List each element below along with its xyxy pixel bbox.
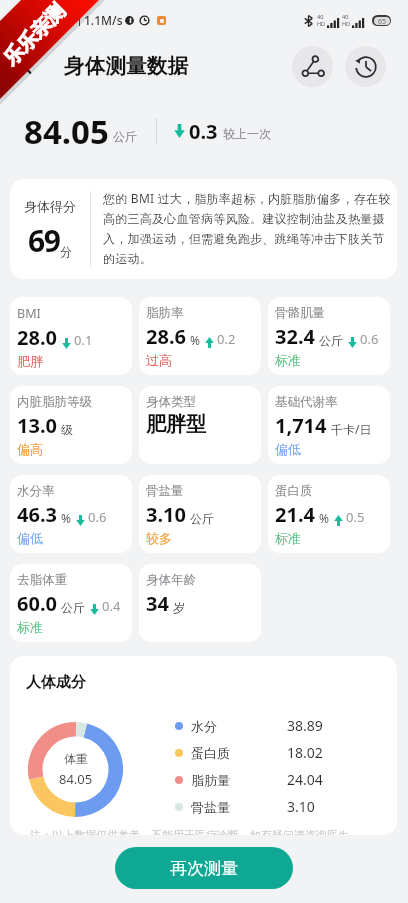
staticText: 水分 [191,718,287,734]
staticText: 较多 [146,530,172,546]
staticText: 蛋白质 [191,745,287,761]
staticText: 骨骼肌量 [275,305,325,321]
staticText: 24.04 [287,770,323,789]
button[interactable]: 骨盐量 [139,475,261,553]
staticText: 体重 [64,751,88,766]
staticText: 1.1M/s [84,12,123,28]
staticText: 基础代谢率 [275,394,338,410]
staticText: 1,714 [275,412,327,439]
staticText: 水分率 [17,483,55,499]
staticText: 60.0 [17,590,57,617]
staticText: 岁 [173,600,185,615]
button[interactable]: Back [6,45,48,87]
staticText: 偏低 [17,530,43,546]
staticText: 过高 [146,352,172,368]
staticText: 28.6 [146,323,186,350]
staticText: 34 [146,590,169,617]
staticText: 蛋白质 [275,483,313,499]
staticText: 0.4 [102,597,121,615]
staticText: % [319,510,329,526]
staticText: 0.1 [74,331,93,349]
staticText: 69 [28,220,60,261]
staticText: 公斤 [113,129,137,144]
staticText: 0.6 [360,330,379,348]
staticText: 偏高 [17,441,43,457]
staticText: 0.3 [189,118,218,145]
staticText: 身体类型 [146,394,196,410]
staticText: 标准 [275,352,301,368]
staticText: 去脂体重 [17,572,67,588]
staticText: 3.10 [287,797,315,816]
staticText: 肥胖型 [146,412,206,437]
staticText: 13.0 [17,412,57,439]
staticText: 再次测量 [170,858,238,879]
staticText: 身体测量数据 [64,53,189,79]
staticText: 公斤 [319,333,343,348]
staticText: 公斤 [61,600,85,615]
button[interactable]: 内脏脂肪等级 [10,386,132,464]
button[interactable]: 再次测量 [115,847,293,889]
staticText: 分 [60,244,72,259]
staticText: 千卡/日 [331,421,372,437]
staticText: % [190,332,200,348]
staticText: 公斤 [190,511,214,526]
staticText: 内脏脂肪等级 [17,394,92,410]
staticText: HD [317,20,326,27]
button[interactable]: 脂肪率 [139,297,261,375]
button[interactable]: 去脂体重 [10,564,132,642]
button[interactable]: 水分率 [10,475,132,553]
staticText: 脂肪率 [146,305,184,321]
staticText: % [61,510,71,526]
button[interactable]: BMI [10,297,132,375]
staticText: 65 [378,17,387,25]
staticText: 40 [317,13,324,20]
button[interactable]: Share [292,46,333,87]
button[interactable]: 身体得分 [10,179,397,279]
button[interactable]: 基础代谢率 [268,386,390,464]
staticText: 身体得分 [24,198,76,214]
staticText: 注：以上数据仅供参考，不能用于医疗诊断，如有疑问请咨询医生 [30,828,349,835]
staticText: 28.0 [17,324,57,351]
staticText: 偏低 [275,441,301,457]
staticText: 18.02 [287,743,323,762]
button[interactable]: 蛋白质 [268,475,390,553]
staticText: 标准 [17,619,43,635]
staticText: 0.6 [88,508,107,526]
button[interactable]: 骨骼肌量 [268,297,390,375]
staticText: 0.5 [346,508,365,526]
staticText: 脂肪量 [191,772,287,788]
button[interactable]: 身体年龄 [139,564,261,642]
staticText: 32.4 [275,323,315,350]
staticText: 46.3 [17,501,57,528]
staticText: BMI [17,305,41,322]
staticText: 84.05 [59,770,93,788]
staticText: 40 [342,13,349,20]
staticText: 骨盐量 [146,483,184,499]
button[interactable]: 身体类型 [139,386,261,464]
staticText: 21.4 [275,501,315,528]
staticText: 乐乐亲测 [0,0,71,71]
staticText: 肥胖 [17,353,43,369]
staticText: 较上一次 [223,126,271,141]
staticText: 84.05 [24,109,109,154]
staticText: 0.2 [217,330,236,348]
staticText: 标准 [275,530,301,546]
button[interactable]: History [345,46,386,87]
staticText: 您的 BMI 过大，脂肪率超标，内脏脂肪偏多，存在较 高的三高及心血管病等风险。… [103,190,391,266]
staticText: 骨盐量 [191,799,287,815]
staticText: 人体成分 [26,673,86,692]
staticText: HD [342,20,351,27]
staticText: 身体年龄 [146,572,196,588]
staticText: 级 [61,422,73,437]
staticText: 38.89 [287,716,323,735]
staticText: 3.10 [146,501,186,528]
